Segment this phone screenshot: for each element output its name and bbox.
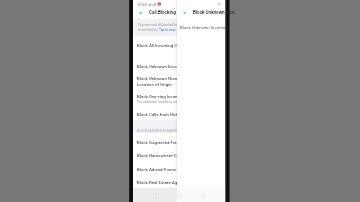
staticText: Tap to view bbox=[159, 28, 176, 32]
button[interactable]: Block Ad and Promo Calls bbox=[133, 162, 225, 176]
button[interactable]: Block Real Estate Agent Calls bbox=[133, 176, 225, 188]
button[interactable]: Block Calls from Hidden Numb bbox=[133, 107, 225, 120]
staticText: Block One-ring Incoming Calls bbox=[137, 94, 196, 99]
staticText: Block Harassment Calls bbox=[137, 153, 184, 158]
button[interactable]: Block Unknown Incoming Calls bbox=[133, 56, 225, 72]
button[interactable]: Home bbox=[174, 190, 186, 202]
staticText: Block All Incoming Calls bbox=[137, 43, 184, 48]
button[interactable]: Block One-ring Incoming Calls bbox=[133, 90, 225, 107]
staticText: Block Suspected Fraud Calls bbox=[137, 140, 193, 145]
button[interactable]: Block Harassment Calls bbox=[133, 149, 225, 162]
button[interactable]: Block Suspected Fraud Calls bbox=[133, 133, 225, 149]
staticText: 10:34 bbox=[137, 2, 147, 7]
button[interactable]: Block Unknown Numbers by bbox=[133, 72, 225, 90]
button[interactable]: Back bbox=[136, 8, 146, 18]
staticText: Block Ad and Promo Calls bbox=[137, 167, 188, 172]
button[interactable]: Back bbox=[180, 8, 190, 18]
staticText: Block Unknown Incoming Calls bbox=[137, 64, 197, 69]
staticText: Block Unknown Inco bbox=[193, 10, 235, 15]
staticText: Block Unknown Numbers by bbox=[137, 76, 192, 81]
staticText: Block Calls from Hidden Numb bbox=[137, 112, 197, 117]
staticText: in call history. bbox=[138, 28, 159, 32]
button[interactable]: Block All Incoming Calls bbox=[133, 36, 225, 56]
staticText: Block Real Estate Agent Calls bbox=[137, 180, 195, 185]
staticText: For unknown numbers only bbox=[137, 100, 179, 104]
staticText: Call Blocking bbox=[149, 10, 176, 15]
staticText: BLOCK MARKED NUMBERS bbox=[137, 129, 179, 133]
button[interactable]: Back bbox=[197, 190, 209, 202]
button[interactable]: Block Unknown Incoming Calls bbox=[177, 20, 225, 36]
staticText: Location of Origin bbox=[137, 82, 172, 87]
staticText: You can view all blocked logs bbox=[138, 23, 181, 27]
staticText: Block Unknown Incoming Calls bbox=[180, 25, 228, 30]
